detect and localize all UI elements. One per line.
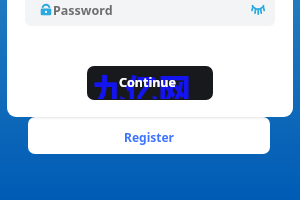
staticText: 九亿网: [92, 66, 191, 99]
button[interactable]: Register: [28, 117, 270, 154]
button[interactable]: Show password: [248, 0, 268, 19]
staticText: Register: [124, 129, 174, 145]
staticText: Continue: [119, 74, 176, 91]
button[interactable]: 九亿网: [87, 66, 213, 100]
button[interactable]: Password: [25, 0, 275, 26]
staticText: Password: [53, 2, 113, 19]
